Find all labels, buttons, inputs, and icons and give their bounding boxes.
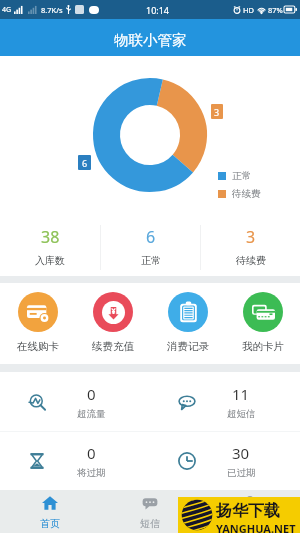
button[interactable]: 11	[150, 372, 300, 431]
button[interactable]: 首页	[0, 490, 100, 533]
staticText: 我的卡片	[242, 340, 284, 353]
button[interactable]: 我的	[200, 490, 300, 533]
staticText: 超短信	[227, 408, 256, 420]
staticText: 4G	[2, 5, 12, 15]
staticText: 待续费	[236, 254, 266, 267]
staticText: 物联小管家	[114, 31, 187, 49]
staticText: 0	[87, 443, 96, 463]
staticText: HD	[243, 5, 255, 15]
staticText: 正常	[141, 254, 161, 267]
staticText: 6	[146, 226, 156, 248]
staticText: 超流量	[77, 408, 106, 420]
button[interactable]: 续费充值	[75, 283, 150, 364]
staticText: 0	[87, 384, 96, 404]
staticText: 8.7K/s	[41, 5, 63, 15]
staticText: 我的	[240, 517, 260, 530]
staticText: 在线购卡	[17, 340, 59, 353]
staticText: 将过期	[77, 467, 106, 479]
button[interactable]: 38	[0, 218, 100, 276]
staticText: 6	[82, 157, 88, 169]
staticText: YANGHUA.NET	[216, 521, 296, 533]
staticText: 3	[246, 226, 256, 248]
staticText: 短信	[140, 517, 160, 530]
button[interactable]: 30	[150, 432, 300, 490]
button[interactable]: 短信	[100, 490, 200, 533]
staticText: 87%	[268, 5, 283, 15]
staticText: 待续费	[232, 188, 261, 200]
button[interactable]: 在线购卡	[0, 283, 75, 364]
staticText: 续费充值	[92, 340, 134, 353]
staticText: 10:14	[146, 4, 170, 16]
staticText: 3	[214, 106, 220, 118]
staticText: 30	[232, 443, 250, 463]
staticText: 入库数	[35, 254, 65, 267]
staticText: 已过期	[227, 467, 256, 479]
staticText: 11	[232, 384, 250, 404]
button[interactable]: 我的卡片	[225, 283, 300, 364]
staticText: 首页	[40, 517, 60, 530]
button[interactable]: 消费记录	[150, 283, 225, 364]
staticText: 38	[41, 226, 60, 248]
button[interactable]: 0	[0, 372, 150, 431]
button[interactable]: 3	[201, 218, 300, 276]
staticText: 扬华下载	[216, 501, 280, 521]
button[interactable]: 6	[101, 218, 200, 276]
staticText: 消费记录	[167, 340, 209, 353]
button[interactable]: 0	[0, 432, 150, 490]
staticText: 正常	[232, 170, 251, 182]
